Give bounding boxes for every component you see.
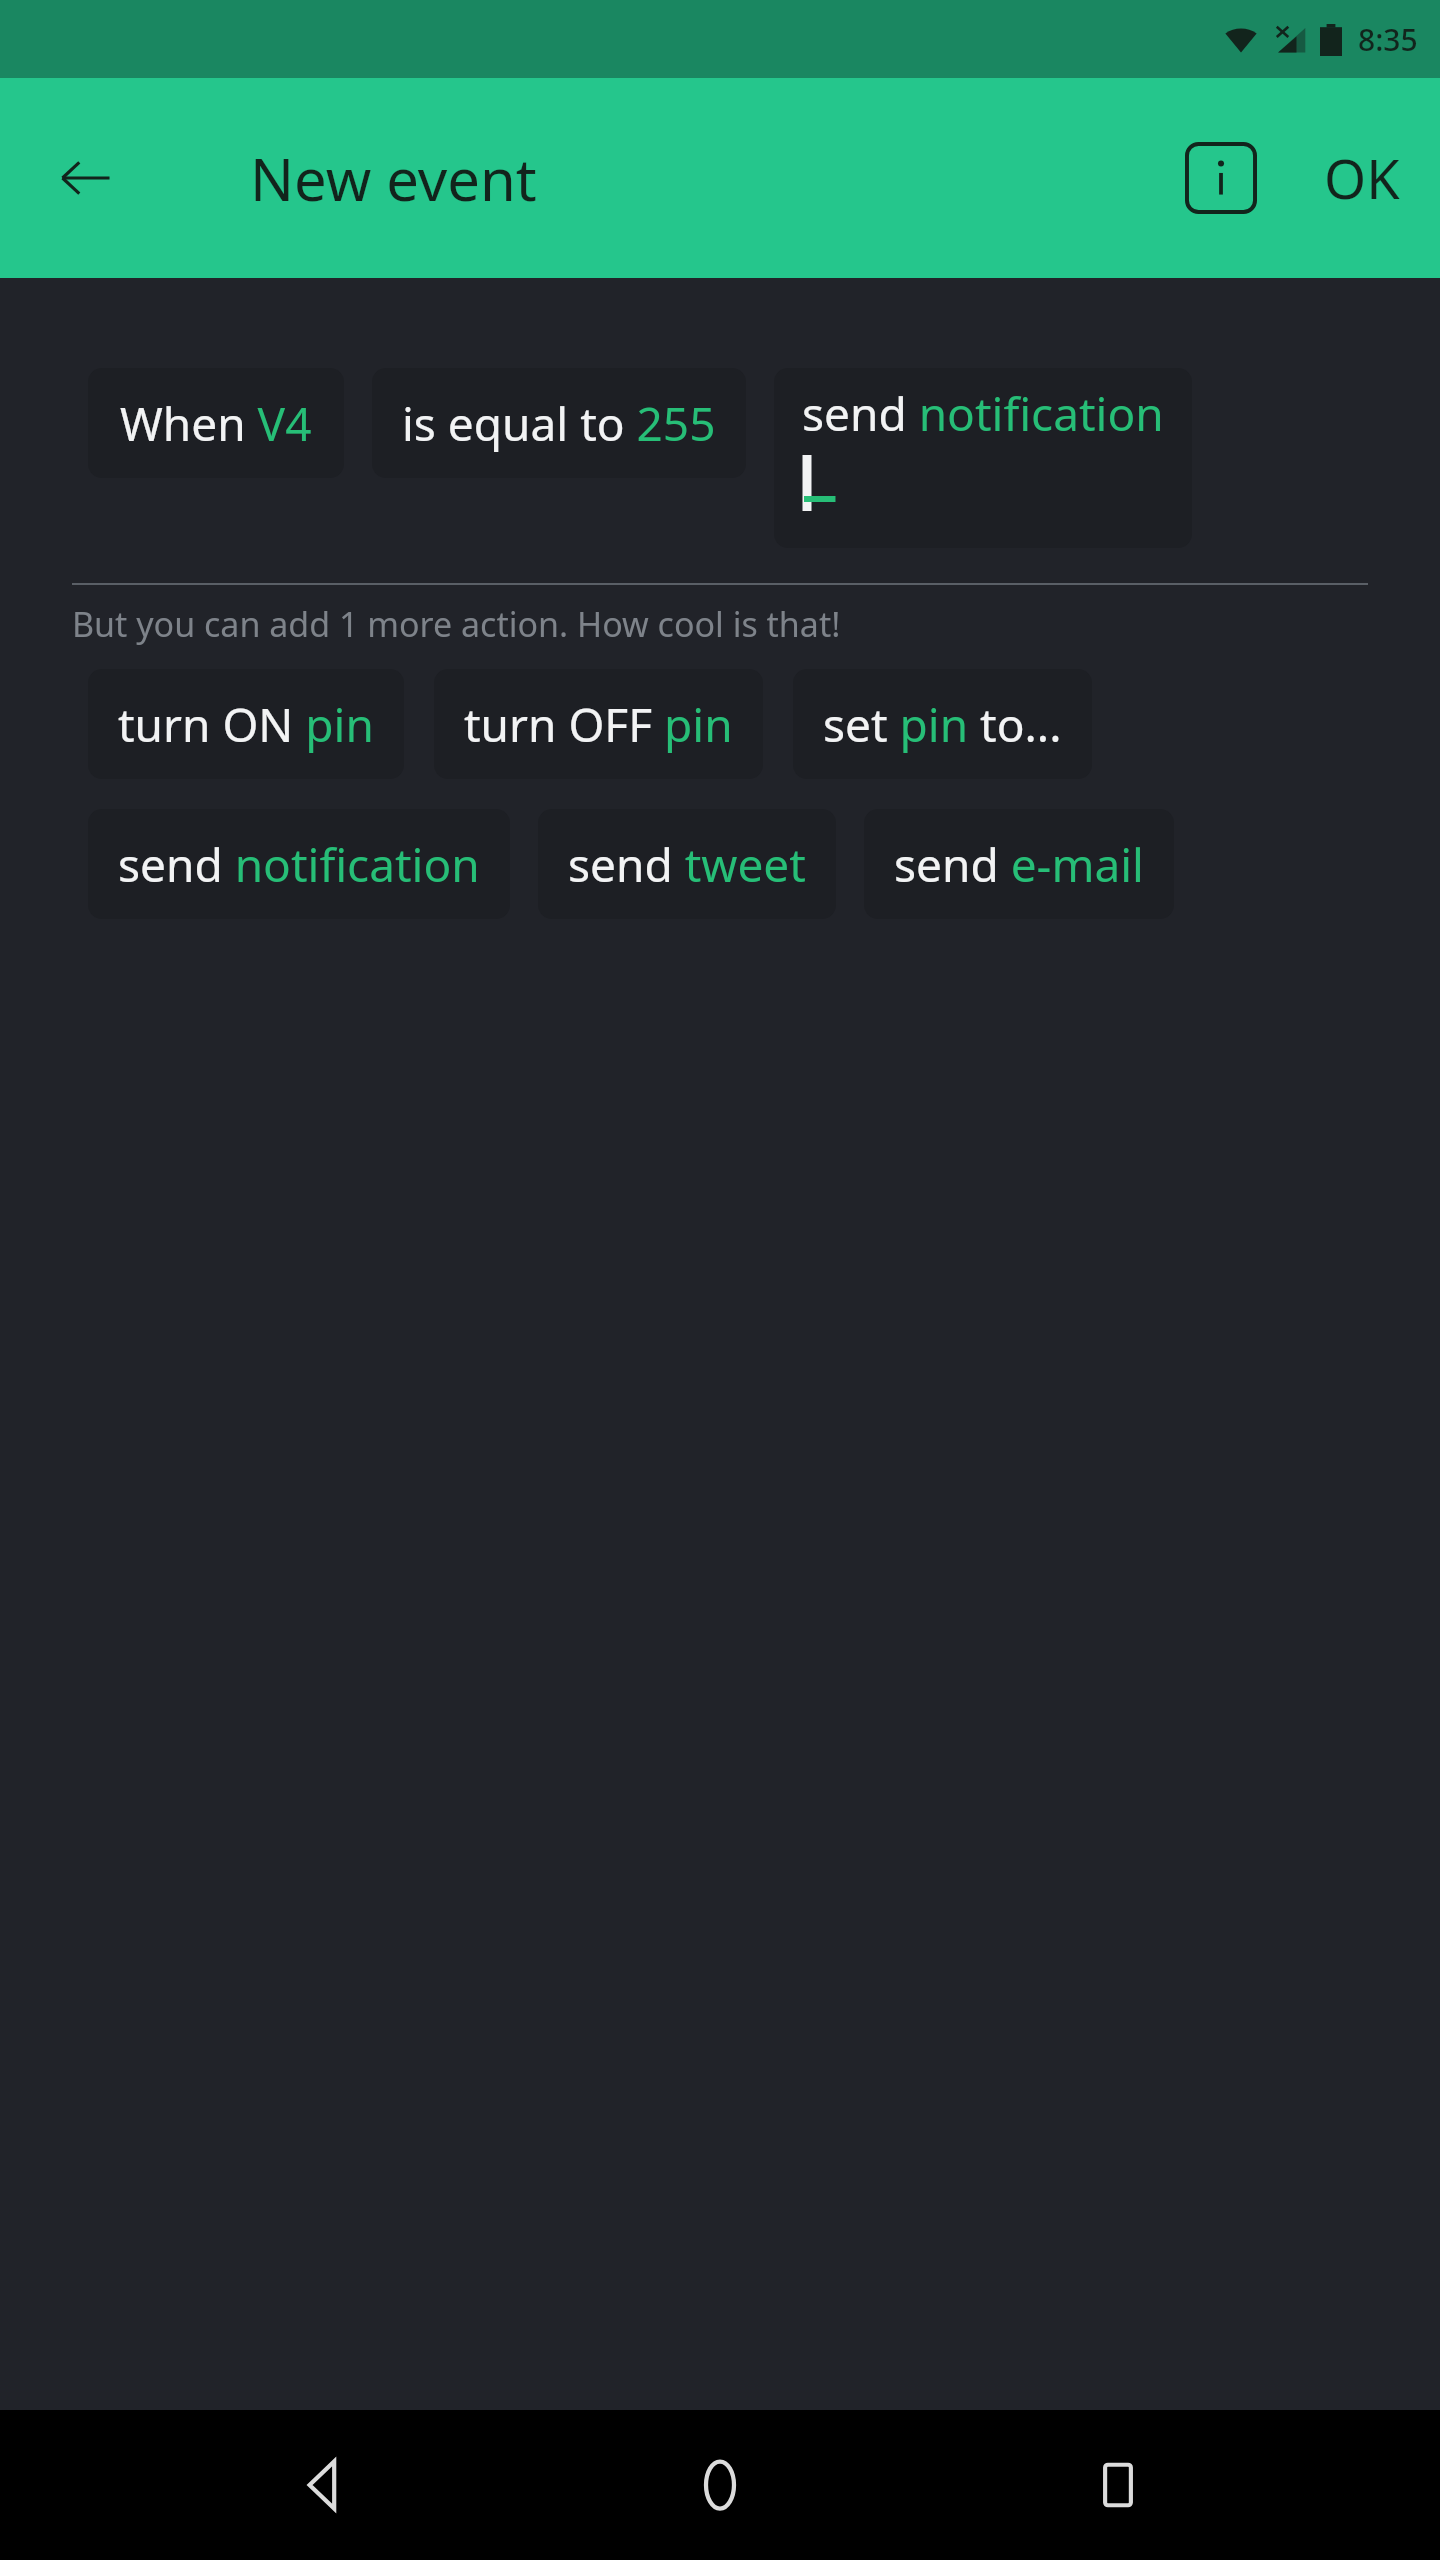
button[interactable]: send notification [88,809,510,919]
button[interactable]: Info [1174,131,1268,225]
staticText: set pin to... [823,693,1062,756]
staticText: send tweet [568,833,806,896]
staticText: When V4 [120,392,312,455]
button[interactable]: send e-mail [864,809,1174,919]
staticText: OK [1324,141,1400,215]
staticText: send notification [118,833,480,896]
button[interactable]: OK [1308,127,1416,229]
button[interactable]: is equal to 255 [372,368,746,478]
staticText: But you can add 1 more action. How cool … [72,601,841,647]
staticText: send notification [802,382,1164,445]
staticText: 8:35 [1358,19,1418,60]
button[interactable]: When V4 [88,368,344,478]
staticText: turn ON pin [118,693,374,756]
staticText: turn OFF pin [464,693,733,756]
button[interactable]: set pin to... [793,669,1092,779]
staticText: send e-mail [894,833,1144,896]
button[interactable]: send notification [774,368,1192,548]
button[interactable]: turn ON pin [88,669,404,779]
button[interactable]: Back [44,136,128,220]
button[interactable]: turn OFF pin [434,669,763,779]
button[interactable]: send tweet [538,809,836,919]
staticText: New event [250,139,537,218]
staticText: is equal to 255 [402,392,716,455]
button[interactable]: Recent apps [1043,2410,1193,2560]
button[interactable]: Back [248,2410,398,2560]
button[interactable]: Home [645,2410,795,2560]
